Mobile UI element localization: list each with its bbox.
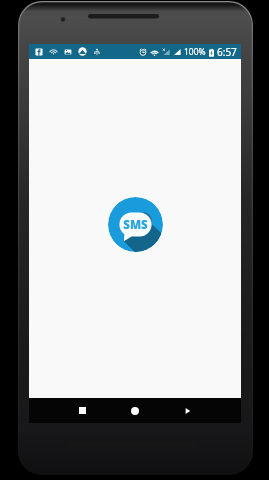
button[interactable]: Recent apps — [67, 398, 97, 423]
button[interactable]: Back — [173, 398, 203, 423]
button[interactable]: Home — [120, 398, 150, 423]
button[interactable]: SMS app icon — [108, 197, 163, 252]
staticText: 6:57 — [217, 45, 237, 59]
staticText: 100% — [184, 46, 206, 58]
staticText: SMS — [123, 217, 148, 233]
